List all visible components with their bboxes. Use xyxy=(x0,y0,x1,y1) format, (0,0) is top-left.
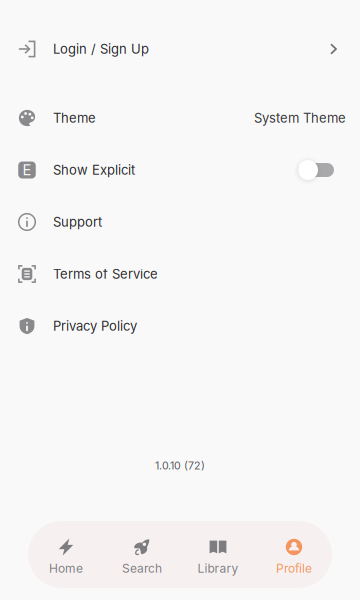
staticText: Privacy Policy xyxy=(53,318,137,334)
staticText: Show Explicit xyxy=(53,162,135,178)
button[interactable]: Terms of Service xyxy=(0,248,360,300)
button[interactable]: Search xyxy=(104,521,180,588)
staticText: Terms of Service xyxy=(53,266,158,282)
button[interactable]: Login / Sign Up xyxy=(0,23,360,75)
staticText: Support xyxy=(53,214,102,230)
button[interactable]: Home xyxy=(28,521,104,588)
button[interactable]: Theme xyxy=(0,92,360,144)
button[interactable]: Support xyxy=(0,196,360,248)
button[interactable]: E xyxy=(0,144,360,196)
button[interactable]: Privacy Policy xyxy=(0,300,360,352)
staticText: Search xyxy=(122,561,162,575)
staticText: Library xyxy=(197,561,238,575)
staticText: Login / Sign Up xyxy=(53,41,149,57)
staticText: Profile xyxy=(276,561,312,575)
button[interactable]: Library xyxy=(180,521,256,588)
button[interactable]: Profile xyxy=(256,521,332,588)
staticText: Home xyxy=(49,561,83,575)
staticText: Theme xyxy=(53,110,96,126)
staticText: System Theme xyxy=(254,110,346,126)
staticText: E xyxy=(22,161,31,179)
staticText: 1.0.10 (72) xyxy=(155,459,205,472)
